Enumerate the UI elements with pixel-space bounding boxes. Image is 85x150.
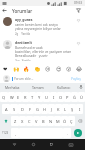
staticText: Bunsehsod erucak basiniltlan, ellerinle … bbox=[15, 46, 72, 58]
button[interactable]: U bbox=[43, 92, 50, 102]
button[interactable]: Y bbox=[36, 92, 43, 102]
button[interactable]: R bbox=[22, 92, 29, 102]
staticText: 👏 bbox=[34, 66, 41, 72]
staticText: Ö bbox=[63, 119, 67, 124]
button[interactable]: Like bbox=[75, 17, 82, 24]
staticText: T bbox=[31, 95, 34, 100]
button[interactable]: Backspace bbox=[75, 116, 85, 126]
staticText: Tamam bbox=[32, 85, 44, 90]
button[interactable]: N bbox=[47, 116, 54, 126]
button[interactable]: I bbox=[76, 104, 83, 114]
button[interactable]: V bbox=[33, 116, 40, 126]
button[interactable]: Emoji bbox=[33, 64, 42, 73]
button[interactable]: Like bbox=[75, 40, 82, 47]
button[interactable]: P bbox=[64, 92, 71, 102]
staticText: I bbox=[53, 95, 55, 100]
staticText: ayy_gunes bbox=[15, 17, 33, 22]
button[interactable]: Keyboard bbox=[66, 140, 75, 149]
button[interactable]: Send bbox=[74, 129, 82, 137]
button[interactable]: ayy_gunes bbox=[0, 15, 85, 38]
button[interactable]: Recent apps bbox=[47, 140, 56, 149]
button[interactable]: Numbers bbox=[0, 128, 11, 138]
staticText: 😮 bbox=[66, 66, 72, 72]
staticText: B bbox=[42, 119, 45, 124]
button[interactable]: Ğ bbox=[71, 92, 78, 102]
button[interactable]: X bbox=[19, 116, 26, 126]
button[interactable]: C bbox=[26, 116, 33, 126]
button[interactable]: deniiizmlt bbox=[0, 38, 85, 63]
button[interactable]: S bbox=[10, 104, 18, 114]
button[interactable]: B bbox=[40, 116, 47, 126]
staticText: 🔥 bbox=[23, 66, 30, 72]
button[interactable]: Voice input bbox=[77, 83, 85, 91]
staticText: . bbox=[67, 131, 68, 136]
button[interactable]: H bbox=[41, 104, 48, 114]
button[interactable]: Emoji bbox=[64, 64, 73, 73]
button[interactable]: Q bbox=[0, 92, 8, 102]
staticText: 🙌 bbox=[13, 66, 20, 72]
button[interactable]: I bbox=[50, 92, 57, 102]
button[interactable]: Merhaba bbox=[0, 83, 25, 91]
staticText: F bbox=[29, 107, 32, 112]
staticText: C bbox=[28, 119, 31, 124]
staticText: X bbox=[21, 119, 24, 124]
staticText: U bbox=[45, 95, 48, 100]
staticText: P bbox=[66, 95, 69, 100]
button[interactable]: K bbox=[55, 104, 62, 114]
staticText: H bbox=[43, 107, 46, 112]
button[interactable]: Ö bbox=[61, 116, 68, 126]
button[interactable]: M bbox=[54, 116, 61, 126]
button[interactable]: Back bbox=[10, 140, 19, 149]
button[interactable]: Back bbox=[0, 6, 9, 15]
button[interactable]: Filter bbox=[74, 6, 83, 15]
button[interactable]: Z bbox=[11, 116, 19, 126]
button[interactable]: Emoji bbox=[43, 64, 52, 73]
staticText: Y bbox=[38, 95, 41, 100]
staticText: M bbox=[56, 119, 60, 124]
button[interactable]: Kullanıcı bbox=[51, 83, 77, 91]
staticText: 2g Yanitla bbox=[15, 32, 30, 36]
staticText: E bbox=[17, 95, 20, 100]
button[interactable]: Tamam bbox=[25, 83, 51, 91]
button[interactable]: Emoji bbox=[75, 64, 84, 73]
staticText: 09:53 bbox=[74, 1, 83, 5]
staticText: Q bbox=[2, 95, 6, 100]
button[interactable]: A bbox=[2, 104, 10, 114]
staticText: 2sa Yanitla bbox=[15, 59, 31, 61]
staticText: deniiizmlt bbox=[15, 40, 32, 45]
staticText: Ş bbox=[71, 107, 74, 112]
button[interactable]: G bbox=[34, 104, 41, 114]
button[interactable]: Ü bbox=[78, 92, 85, 102]
button[interactable]: Emoji bbox=[22, 64, 31, 73]
button[interactable]: Ç bbox=[68, 116, 75, 126]
staticText: ❤️ bbox=[3, 66, 8, 72]
button[interactable]: E bbox=[15, 92, 22, 102]
button[interactable]: D bbox=[18, 104, 26, 114]
button[interactable]: Emoji bbox=[12, 64, 21, 73]
button[interactable]: Emoji bbox=[1, 64, 10, 73]
staticText: I bbox=[79, 107, 81, 112]
staticText: Ç bbox=[70, 119, 73, 124]
button[interactable]: J bbox=[48, 104, 55, 114]
staticText: L bbox=[64, 107, 67, 112]
staticText: Ğ bbox=[73, 95, 76, 100]
staticText: V bbox=[35, 119, 38, 124]
button[interactable]: Paylaş bbox=[70, 76, 82, 82]
button[interactable]: Ş bbox=[69, 104, 76, 114]
staticText: Yorum ekle... bbox=[14, 77, 70, 81]
button[interactable]: Home bbox=[29, 140, 38, 149]
button[interactable]: W bbox=[8, 92, 15, 102]
button[interactable]: Shift bbox=[0, 116, 11, 126]
button[interactable]: Emoji bbox=[54, 64, 63, 73]
button[interactable]: L bbox=[62, 104, 69, 114]
staticText: Kullanıcı bbox=[57, 85, 71, 90]
button[interactable]: , bbox=[11, 128, 19, 138]
button[interactable]: T bbox=[29, 92, 36, 102]
staticText: D bbox=[21, 107, 24, 112]
staticText: 😢 bbox=[45, 66, 51, 72]
staticText: A bbox=[5, 107, 8, 112]
button[interactable]: O bbox=[57, 92, 64, 102]
button[interactable]: F bbox=[26, 104, 34, 114]
